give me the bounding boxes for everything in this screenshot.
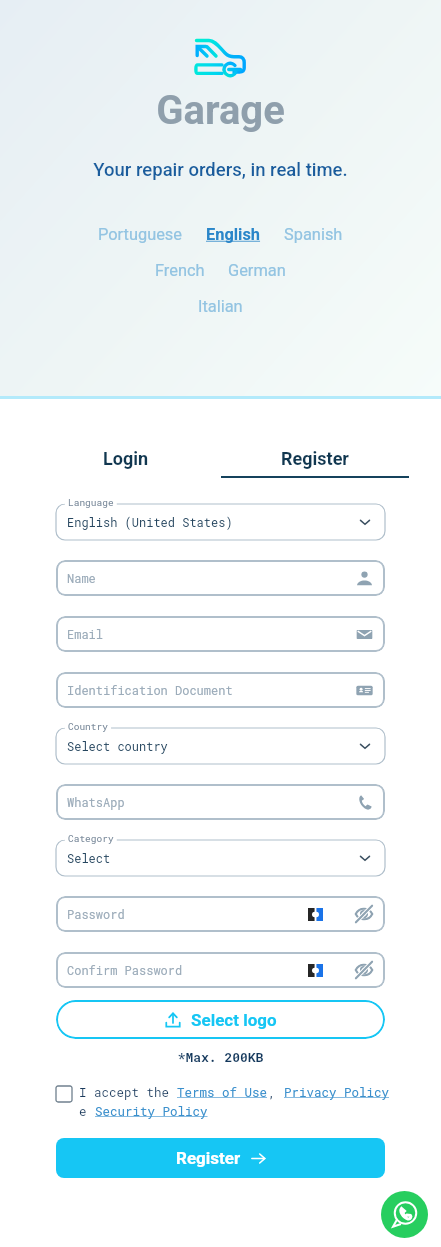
button[interactable]: Accept terms	[56, 1086, 72, 1102]
staticText: WhatsApp	[67, 794, 125, 810]
staticText: Spanish	[284, 225, 343, 244]
staticText: Select	[67, 850, 111, 866]
button[interactable]: Confirm Password	[56, 952, 385, 988]
staticText: Register	[176, 1148, 241, 1168]
staticText: Country	[68, 720, 108, 733]
button[interactable]: Portuguese	[98, 225, 183, 244]
button[interactable]: Country	[56, 728, 385, 764]
button[interactable]: Italian	[198, 297, 243, 316]
button[interactable]: Terms of Use	[177, 1084, 268, 1100]
button[interactable]: WhatsApp	[56, 784, 385, 820]
staticText: Language	[68, 496, 114, 509]
button[interactable]: German	[228, 261, 286, 280]
button[interactable]: Spanish	[284, 225, 343, 244]
staticText: English (United States)	[67, 514, 233, 530]
button[interactable]: Select logo	[56, 1000, 385, 1039]
button[interactable]: Chat on WhatsApp	[381, 1191, 428, 1238]
button[interactable]: Category	[56, 840, 385, 876]
button[interactable]: Name	[56, 560, 385, 596]
button[interactable]: Password	[56, 896, 385, 932]
button[interactable]: Language	[56, 504, 385, 540]
button[interactable]: Email	[56, 616, 385, 652]
staticText: German	[228, 261, 286, 280]
staticText: Password	[67, 906, 125, 922]
staticText: Select country	[67, 738, 168, 754]
button[interactable]: Password manager	[308, 964, 323, 977]
button[interactable]: English	[206, 225, 261, 244]
staticText: Garage	[0, 87, 441, 134]
staticText: *Max. 200KB	[0, 1048, 441, 1065]
staticText: Register	[281, 448, 349, 469]
staticText: ,	[268, 1084, 284, 1100]
button[interactable]: Security Policy	[95, 1103, 208, 1119]
staticText: Name	[67, 570, 96, 586]
staticText: Select logo	[191, 1010, 277, 1030]
staticText: I accept the	[79, 1084, 177, 1100]
staticText: Confirm Password	[67, 962, 183, 978]
staticText: e	[79, 1103, 95, 1119]
staticText: English	[206, 225, 261, 244]
button[interactable]: Login	[32, 440, 220, 478]
staticText: Identification Document	[67, 682, 233, 698]
button[interactable]: Show password	[355, 962, 373, 978]
button[interactable]: Privacy Policy	[284, 1084, 390, 1100]
staticText: Your repair orders, in real time.	[0, 159, 441, 181]
staticText: Italian	[198, 297, 243, 316]
staticText: Login	[103, 448, 149, 469]
button[interactable]: Register	[56, 1138, 385, 1178]
staticText: Category	[68, 832, 114, 845]
staticText: French	[155, 261, 205, 280]
button[interactable]: Register	[221, 440, 409, 478]
staticText: Email	[67, 626, 104, 642]
button[interactable]: French	[155, 261, 205, 280]
staticText: Portuguese	[98, 225, 183, 244]
button[interactable]: Password manager	[308, 908, 323, 921]
button[interactable]: Identification Document	[56, 672, 385, 708]
button[interactable]: Show password	[355, 906, 373, 922]
